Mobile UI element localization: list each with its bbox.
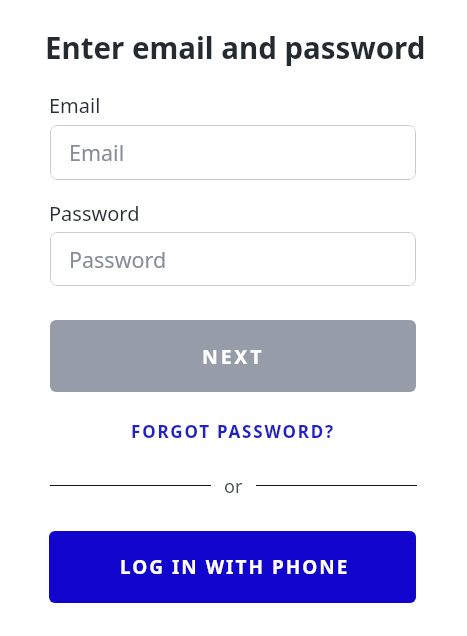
button[interactable]: Password xyxy=(50,232,416,286)
staticText: Password xyxy=(69,245,167,274)
button[interactable]: Email xyxy=(50,125,416,180)
staticText: Enter email and password xyxy=(45,27,426,67)
staticText: FORGOT PASSWORD? xyxy=(131,420,335,443)
button[interactable]: FORGOT PASSWORD? xyxy=(50,414,416,448)
staticText: LOG IN WITH PHONE xyxy=(120,554,350,580)
staticText: Email xyxy=(49,92,101,119)
staticText: Email xyxy=(69,138,125,167)
staticText: or xyxy=(224,474,243,499)
button[interactable]: LOG IN WITH PHONE xyxy=(49,531,416,603)
button[interactable]: NEXT xyxy=(50,320,416,392)
staticText: Password xyxy=(49,200,140,227)
staticText: NEXT xyxy=(202,343,265,370)
